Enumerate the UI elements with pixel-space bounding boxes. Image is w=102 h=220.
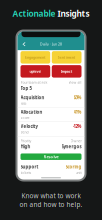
staticText: Synergos [61, 144, 81, 149]
button[interactable]: Allocation [17, 108, 84, 122]
staticText: Your team at risk [20, 80, 47, 85]
staticText: on and how to help. [19, 200, 82, 209]
staticText: Sentiment [58, 55, 76, 60]
button[interactable]: Sentiment [52, 51, 82, 64]
button[interactable]: Engagement [20, 51, 50, 64]
staticText: Support [20, 164, 38, 170]
staticText: Resolve [43, 154, 58, 159]
staticText: High [20, 144, 30, 149]
staticText: uplevel [29, 69, 41, 74]
staticText: unit [75, 170, 81, 175]
staticText: View all [68, 80, 81, 85]
staticText: score [20, 115, 29, 120]
staticText: Scoring [65, 164, 81, 170]
button[interactable]: uplevel [20, 65, 50, 78]
staticText: -12% [72, 123, 81, 129]
button[interactable]: Acquisition [17, 93, 84, 107]
staticText: Know what to work [21, 191, 80, 200]
staticText: trend [20, 130, 28, 134]
button[interactable]: Back [20, 41, 27, 48]
staticText: Engagement [25, 55, 46, 60]
staticText: Actionable [12, 8, 55, 19]
staticText: Priority [20, 138, 31, 143]
staticText: rate [20, 101, 26, 106]
staticText: tickets [20, 170, 31, 175]
staticText: Allocation [20, 109, 42, 115]
staticText: Daily · Jun 28 [40, 42, 62, 46]
staticText: Acquisition [20, 95, 44, 100]
staticText: Owner [70, 138, 81, 143]
staticText: Velocity [20, 123, 37, 129]
staticText: 63% [73, 95, 81, 100]
button[interactable]: Velocity [17, 122, 84, 136]
staticText: Top 5 [20, 85, 31, 91]
staticText: Insights [55, 8, 89, 19]
staticText: 41% [73, 109, 81, 115]
staticText: Impact [61, 69, 73, 74]
button[interactable]: Impact [52, 65, 82, 78]
button[interactable]: Resolve [20, 153, 81, 160]
